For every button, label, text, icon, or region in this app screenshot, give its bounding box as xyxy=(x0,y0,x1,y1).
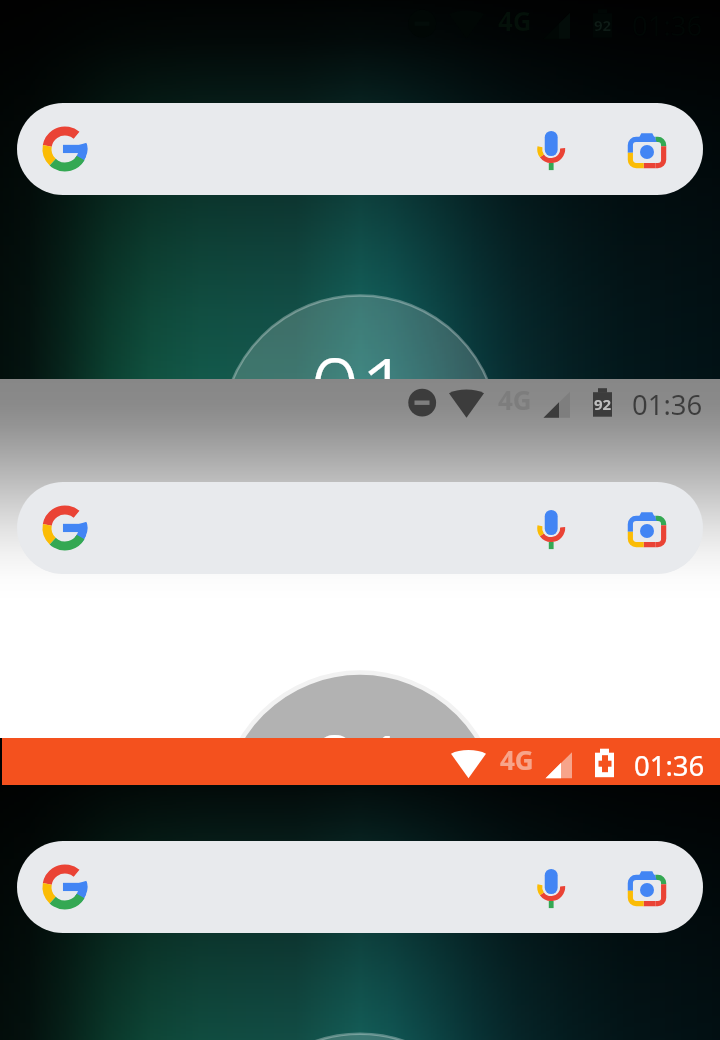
staticText: 01:36 xyxy=(634,747,705,784)
button[interactable]: Clock xyxy=(0,738,720,1040)
button[interactable]: Search xyxy=(17,103,703,195)
staticText: 4G xyxy=(498,3,532,38)
staticText: 01 xyxy=(0,328,720,448)
staticText: 92 xyxy=(593,15,612,35)
staticText: 92 xyxy=(593,394,612,414)
staticText: 01:36 xyxy=(632,386,703,423)
staticText: 01 xyxy=(0,705,720,825)
staticText: 4G xyxy=(500,742,534,777)
button[interactable]: Clock xyxy=(0,0,720,379)
button[interactable]: Search xyxy=(17,482,703,574)
button[interactable]: Clock xyxy=(0,379,720,738)
button[interactable]: Search xyxy=(17,841,703,933)
staticText: 4G xyxy=(498,382,532,417)
